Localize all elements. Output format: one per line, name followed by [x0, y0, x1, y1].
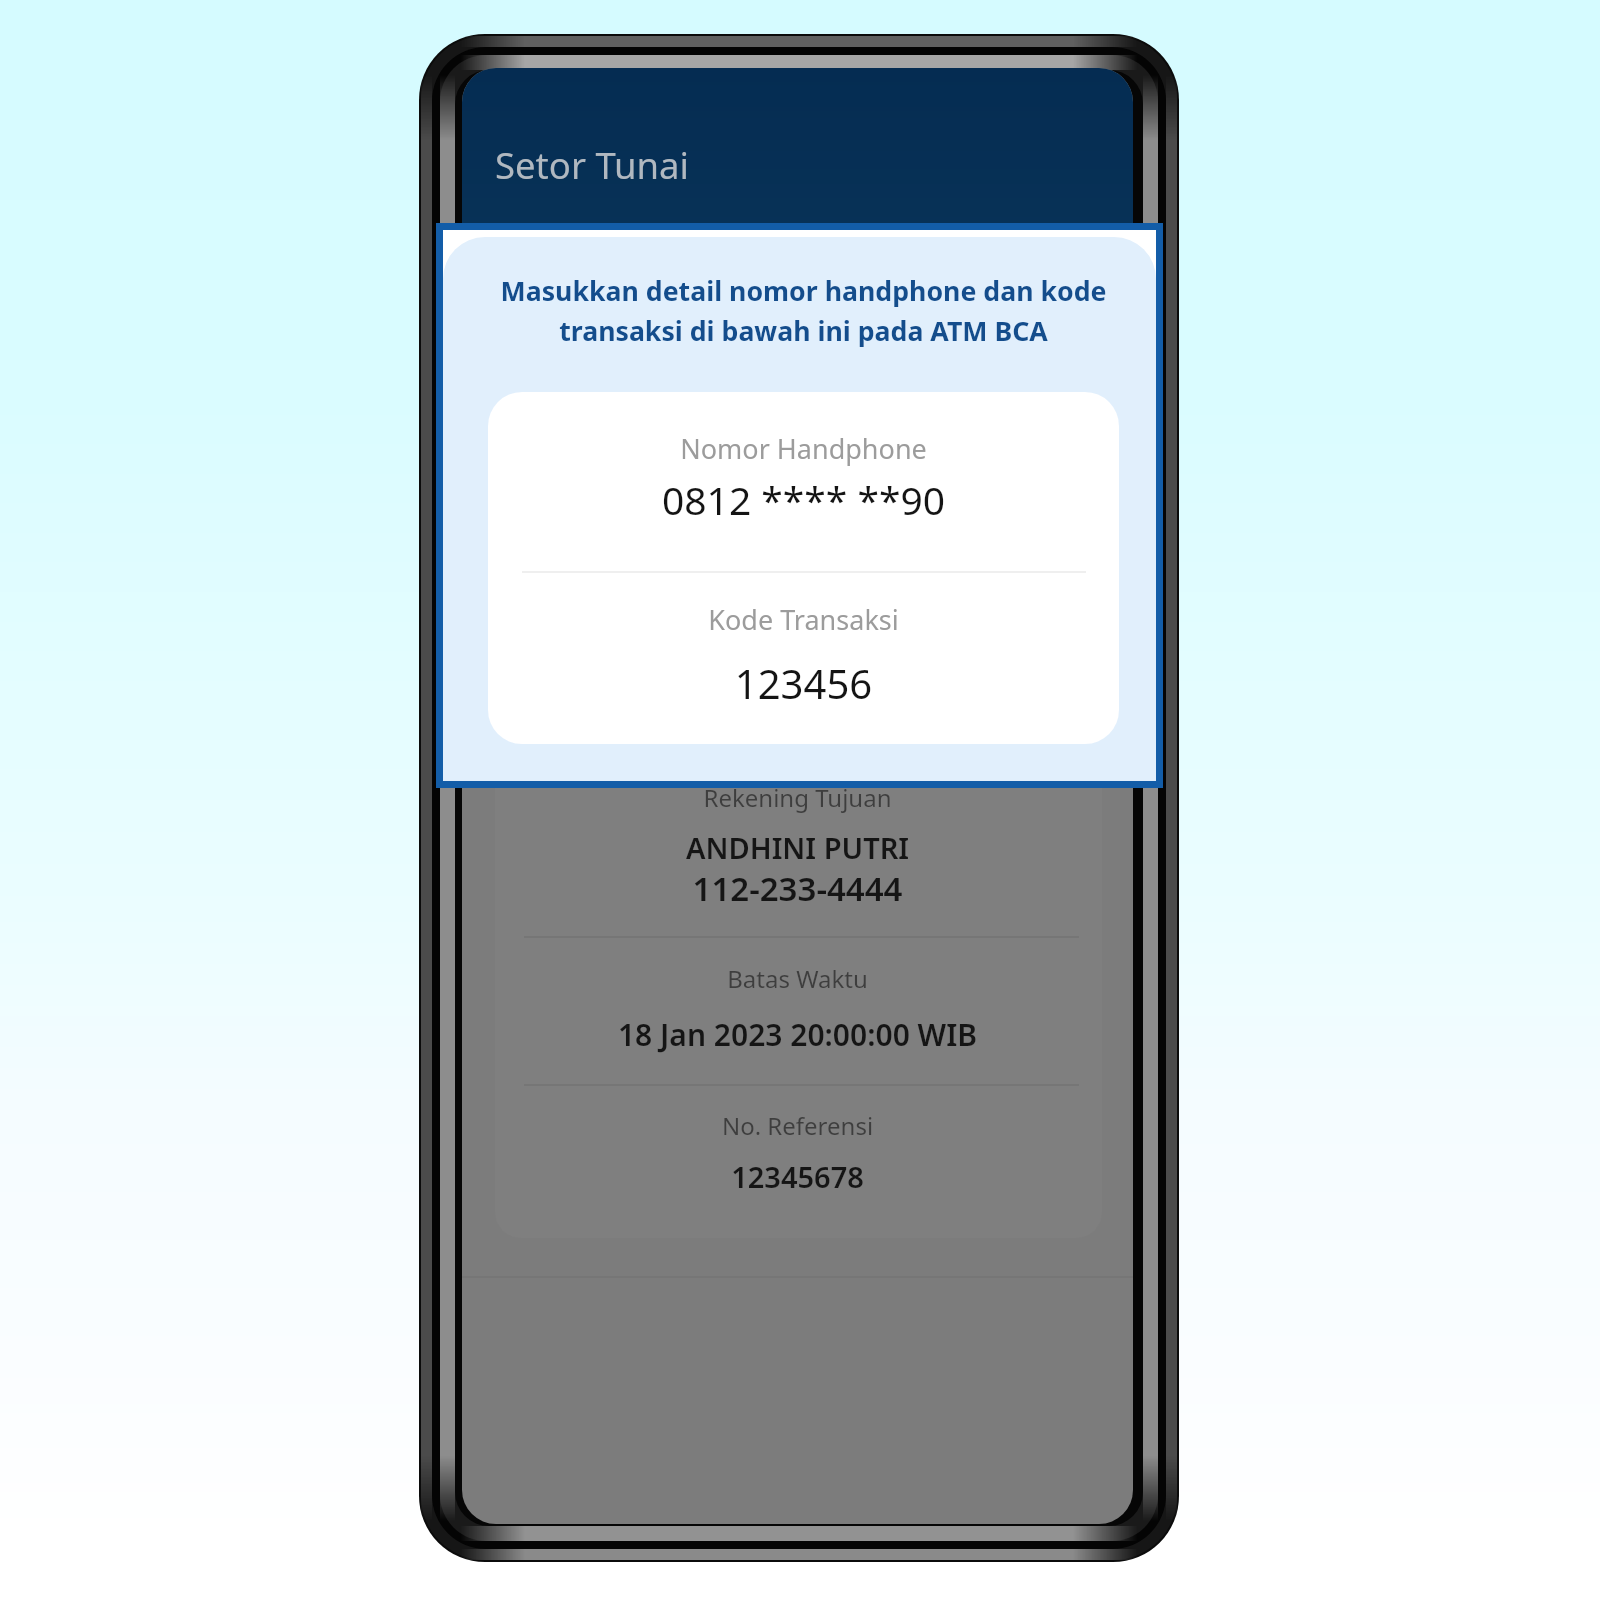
- staticText: Masukkan detail nomor handphone dan kode…: [447, 272, 1160, 349]
- staticText: Kode Transaksi: [488, 601, 1119, 638]
- staticText: No. Referensi: [462, 1109, 1133, 1142]
- staticText: ANDHINI PUTRI: [462, 828, 1133, 867]
- staticText: Nomor Handphone: [488, 430, 1119, 467]
- staticText: 18 Jan 2023 20:00:00 WIB: [462, 1014, 1133, 1055]
- staticText: 0812 **** **90: [488, 473, 1119, 526]
- staticText: Rekening Tujuan: [462, 781, 1133, 814]
- staticText: 12345678: [462, 1157, 1133, 1196]
- button[interactable]: Setor Tunai: [495, 140, 689, 190]
- button[interactable]: Masukkan detail nomor handphone dan kode…: [443, 230, 1156, 781]
- staticText: Batas Waktu: [462, 962, 1133, 995]
- staticText: 112-233-4444: [462, 866, 1133, 911]
- staticText: 123456: [488, 656, 1119, 710]
